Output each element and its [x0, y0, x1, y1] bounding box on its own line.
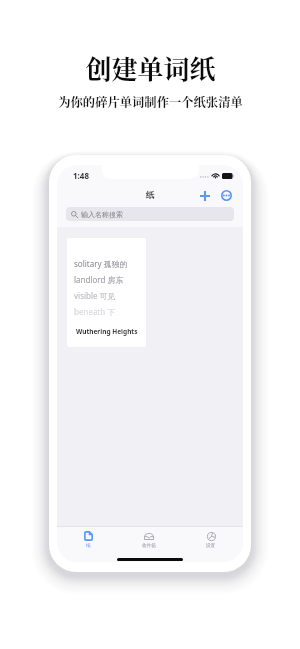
staticText: 收件箱	[142, 543, 156, 549]
staticText: 纸	[86, 543, 91, 549]
staticText: 1:48	[73, 170, 89, 181]
button[interactable]: 收件箱	[132, 527, 166, 553]
staticText: solitary 孤独的	[74, 258, 128, 269]
staticText: Wuthering Heights	[76, 327, 138, 336]
button[interactable]: Add	[196, 187, 213, 204]
staticText: landlord 房东	[74, 274, 124, 285]
staticText: 纸	[146, 190, 155, 201]
staticText: 创建单词纸	[85, 49, 216, 86]
button[interactable]: 纸	[71, 527, 105, 553]
button[interactable]: 输入名称搜索	[66, 207, 234, 221]
staticText: 设置	[206, 543, 216, 549]
button[interactable]: More options	[218, 187, 235, 204]
button[interactable]: solitary 孤独的	[67, 238, 146, 347]
button[interactable]: 设置	[194, 527, 228, 553]
staticText: beneath 下	[74, 306, 116, 317]
staticText: visible 可见	[74, 290, 116, 301]
staticText: 输入名称搜索	[81, 210, 123, 219]
staticText: 为你的碎片单词制作一个纸张清单	[58, 93, 243, 111]
